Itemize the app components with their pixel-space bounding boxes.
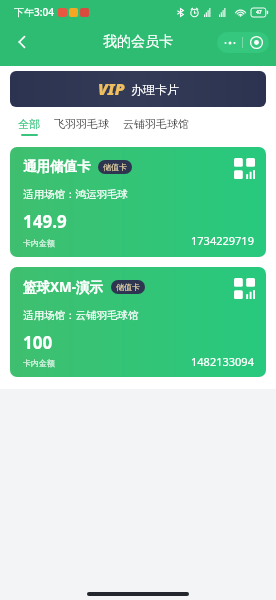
staticText: 储值卡 xyxy=(116,282,140,292)
button[interactable]: Close xyxy=(243,32,269,53)
staticText: 适用场馆：云铺羽毛球馆 xyxy=(23,309,139,322)
staticText: VIP xyxy=(98,78,125,100)
staticText: 100 xyxy=(23,331,53,354)
staticText: 通用储值卡 xyxy=(23,158,91,175)
staticText: 办理卡片 xyxy=(131,82,179,97)
button[interactable]: 篮球XM-演示 xyxy=(10,267,266,377)
button[interactable]: 云铺羽毛球馆 xyxy=(123,117,189,139)
staticText: 下午3:04 xyxy=(14,5,54,19)
staticText: 卡内金额 xyxy=(23,238,55,248)
staticText: 储值卡 xyxy=(103,162,127,172)
staticText: 篮球XM-演示 xyxy=(23,278,104,296)
button[interactable]: More xyxy=(217,32,242,53)
staticText: 我的会员卡 xyxy=(103,33,173,51)
staticText: 47 xyxy=(256,9,262,16)
button[interactable]: VIP xyxy=(10,71,266,107)
button[interactable]: 通用储值卡 xyxy=(10,147,266,257)
staticText: 全部 xyxy=(18,117,40,131)
button[interactable]: Back xyxy=(6,26,38,58)
staticText: 1482133094 xyxy=(191,354,254,368)
staticText: 云铺羽毛球馆 xyxy=(123,117,189,131)
staticText: 149.9 xyxy=(23,210,67,233)
staticText: 1734229719 xyxy=(191,233,254,248)
button[interactable]: 全部 xyxy=(18,117,40,139)
staticText: 卡内金额 xyxy=(23,358,55,368)
staticText: 飞羽羽毛球 xyxy=(54,117,109,131)
button[interactable]: 飞羽羽毛球 xyxy=(54,117,109,139)
staticText: 适用场馆：鸿运羽毛球 xyxy=(23,188,128,201)
